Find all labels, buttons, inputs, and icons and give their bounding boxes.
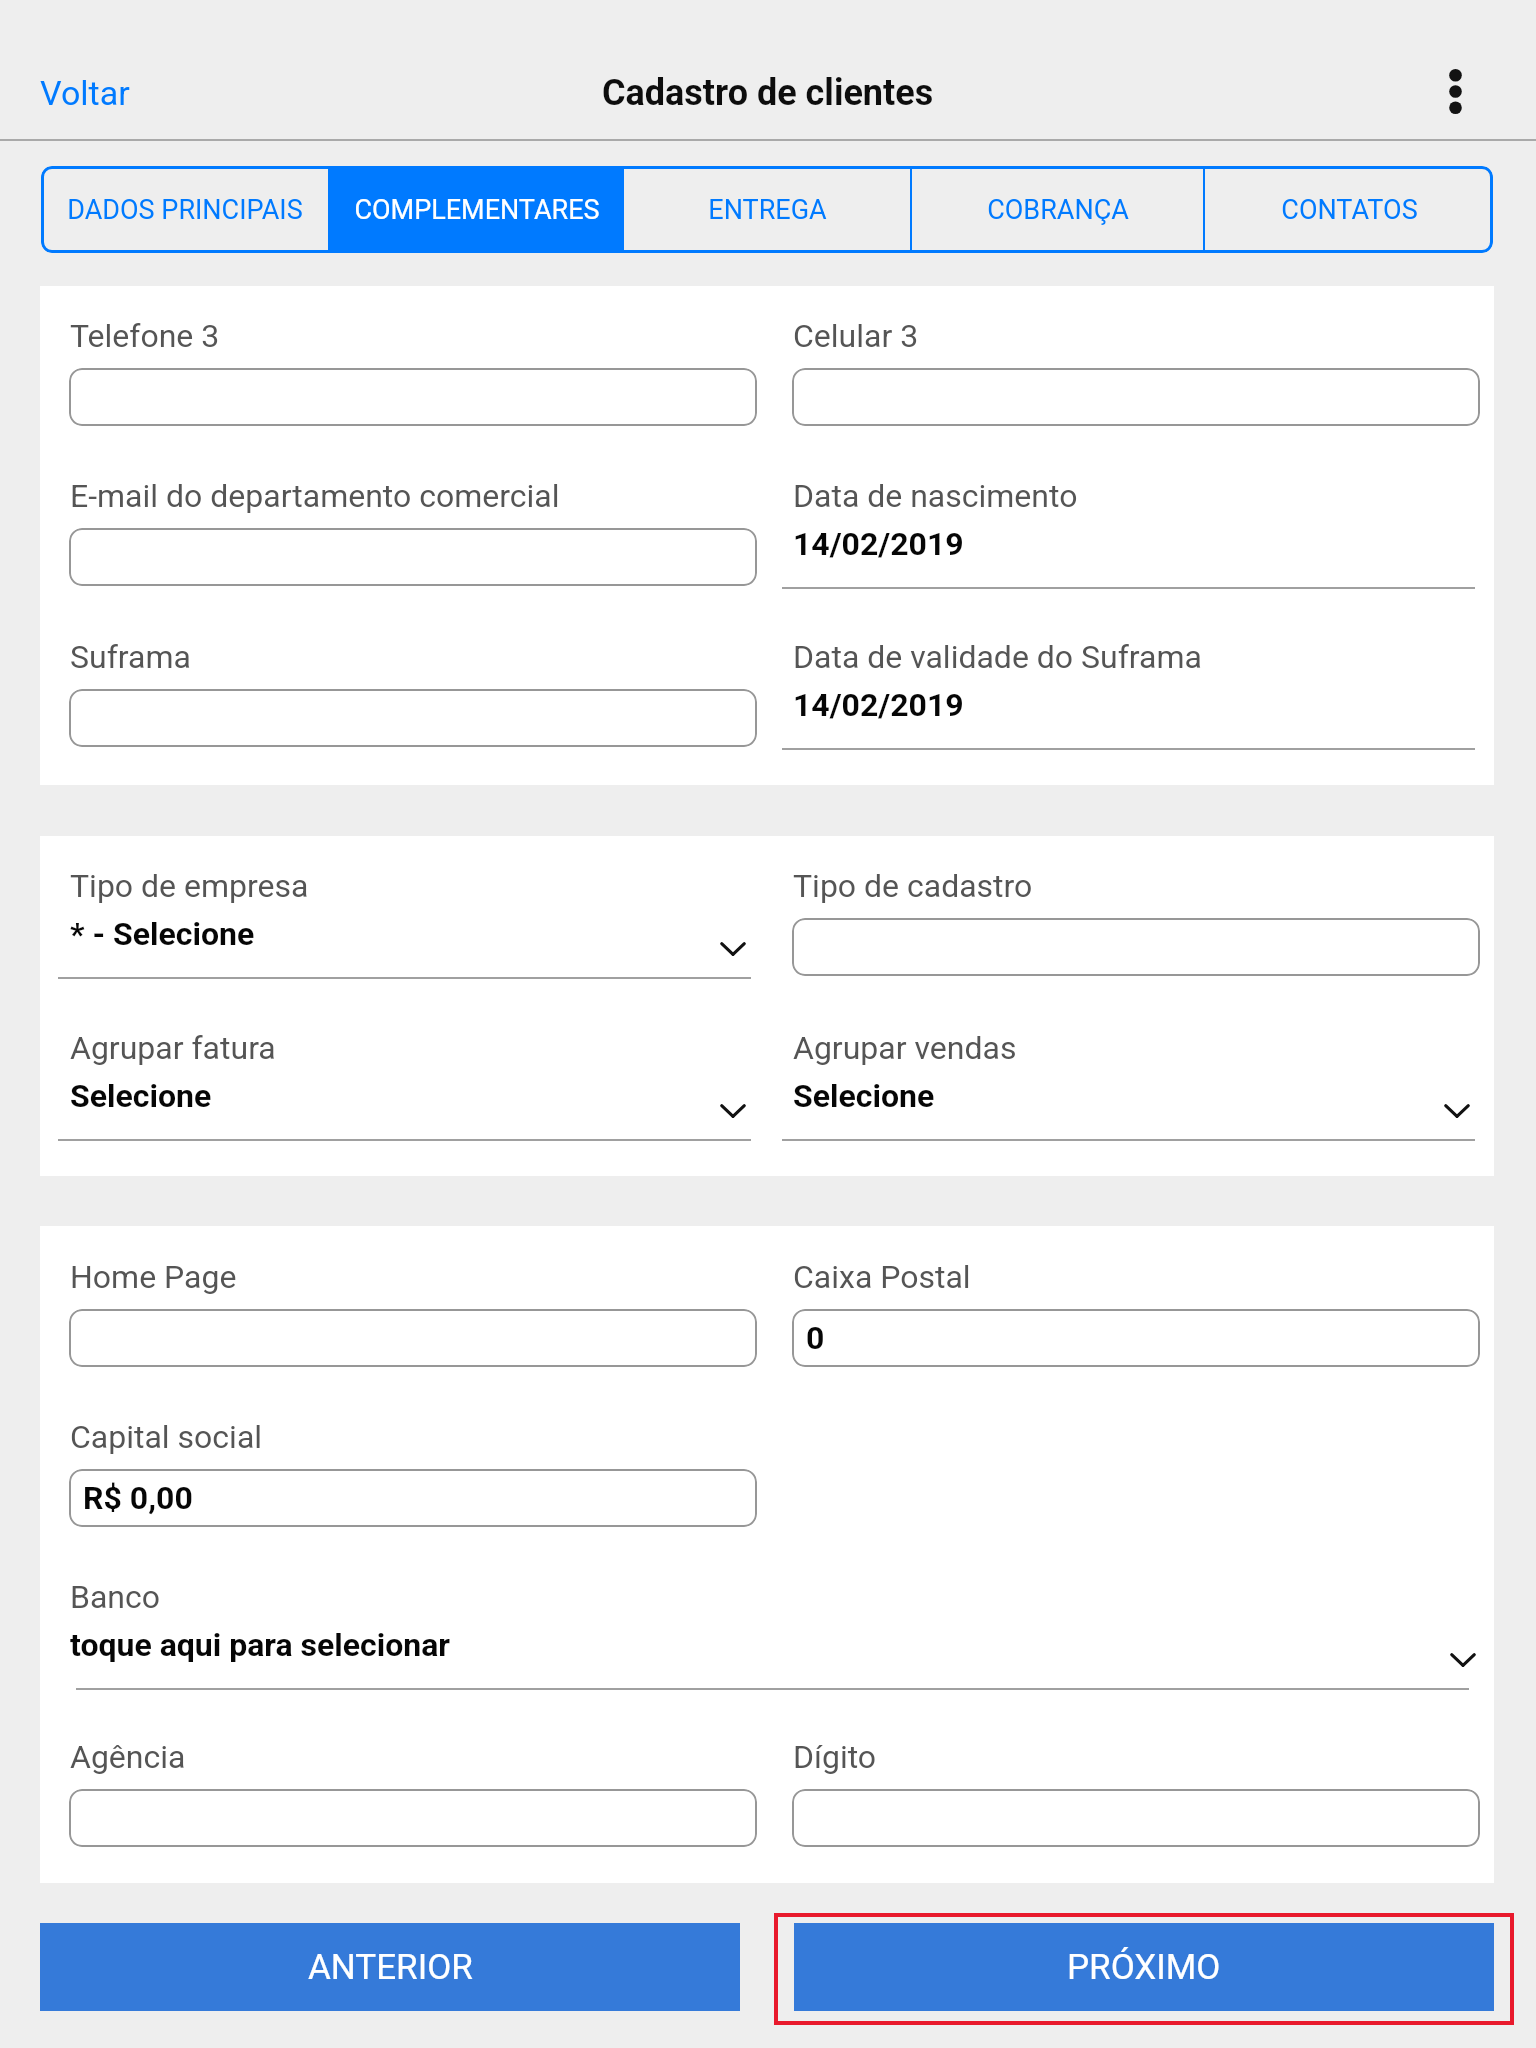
staticText: COBRANÇA [987, 194, 1129, 226]
button[interactable]: Voltar [40, 0, 160, 141]
button[interactable]: 14/02/2019 [782, 477, 1475, 595]
staticText: Celular 3 [793, 317, 919, 355]
button[interactable]: ENTREGA [624, 166, 910, 253]
staticText: 0 [806, 1319, 825, 1357]
staticText: Home Page [70, 1258, 237, 1296]
staticText: Data de validade do Suframa [793, 638, 1202, 676]
staticText: ANTERIOR [308, 1947, 473, 1988]
button[interactable]: 14/02/2019 [782, 638, 1475, 756]
staticText: Caixa Postal [793, 1258, 971, 1296]
staticText: Agrupar vendas [793, 1029, 1017, 1067]
button[interactable]: 0 [792, 1309, 1480, 1367]
button[interactable] [69, 1789, 757, 1847]
staticText: Selecione [70, 1077, 212, 1115]
button[interactable]: Selecione [782, 1029, 1475, 1147]
button[interactable]: COBRANÇA [912, 166, 1203, 253]
staticText: Agência [70, 1738, 186, 1776]
staticText: toque aqui para selecionar [70, 1626, 451, 1664]
staticText: COMPLEMENTARES [354, 194, 600, 226]
button[interactable] [69, 368, 757, 426]
staticText: * - Selecione [70, 915, 255, 953]
staticText: Cadastro de clientes [602, 72, 934, 114]
staticText: Dígito [793, 1738, 877, 1776]
staticText: E-mail do departamento comercial [70, 477, 560, 515]
button[interactable]: * - Selecione [58, 867, 751, 985]
button[interactable]: toque aqui para selecionar [76, 1578, 1469, 1696]
button[interactable] [69, 1309, 757, 1367]
button[interactable] [69, 528, 757, 586]
button[interactable] [69, 689, 757, 747]
button[interactable]: ANTERIOR [40, 1923, 740, 2011]
staticText: ENTREGA [708, 194, 827, 226]
staticText: Data de nascimento [793, 477, 1078, 515]
button[interactable]: Selecione [58, 1029, 751, 1147]
staticText: Agrupar fatura [70, 1029, 276, 1067]
button[interactable]: CONTATOS [1205, 166, 1493, 253]
staticText: Telefone 3 [70, 317, 220, 355]
staticText: Selecione [793, 1077, 935, 1115]
button[interactable]: R$ 0,00 [69, 1469, 757, 1527]
staticText: Tipo de cadastro [793, 867, 1033, 905]
staticText: 14/02/2019 [793, 686, 964, 724]
staticText: PRÓXIMO [1067, 1947, 1221, 1988]
button[interactable] [792, 918, 1480, 976]
button[interactable]: DADOS PRINCIPAIS [41, 166, 328, 253]
button[interactable]: COMPLEMENTARES [330, 166, 624, 253]
button[interactable]: PRÓXIMO [794, 1923, 1494, 2011]
staticText: Capital social [70, 1418, 263, 1456]
staticText: CONTATOS [1281, 194, 1418, 226]
staticText: Voltar [40, 73, 130, 113]
staticText: 14/02/2019 [793, 525, 964, 563]
staticText: R$ 0,00 [83, 1479, 193, 1517]
staticText: Tipo de empresa [70, 867, 309, 905]
staticText: Banco [70, 1578, 161, 1616]
button[interactable] [792, 1789, 1480, 1847]
staticText: Suframa [70, 638, 191, 676]
staticText: DADOS PRINCIPAIS [67, 194, 303, 226]
button[interactable]: More options [1400, 0, 1510, 141]
button[interactable] [792, 368, 1480, 426]
